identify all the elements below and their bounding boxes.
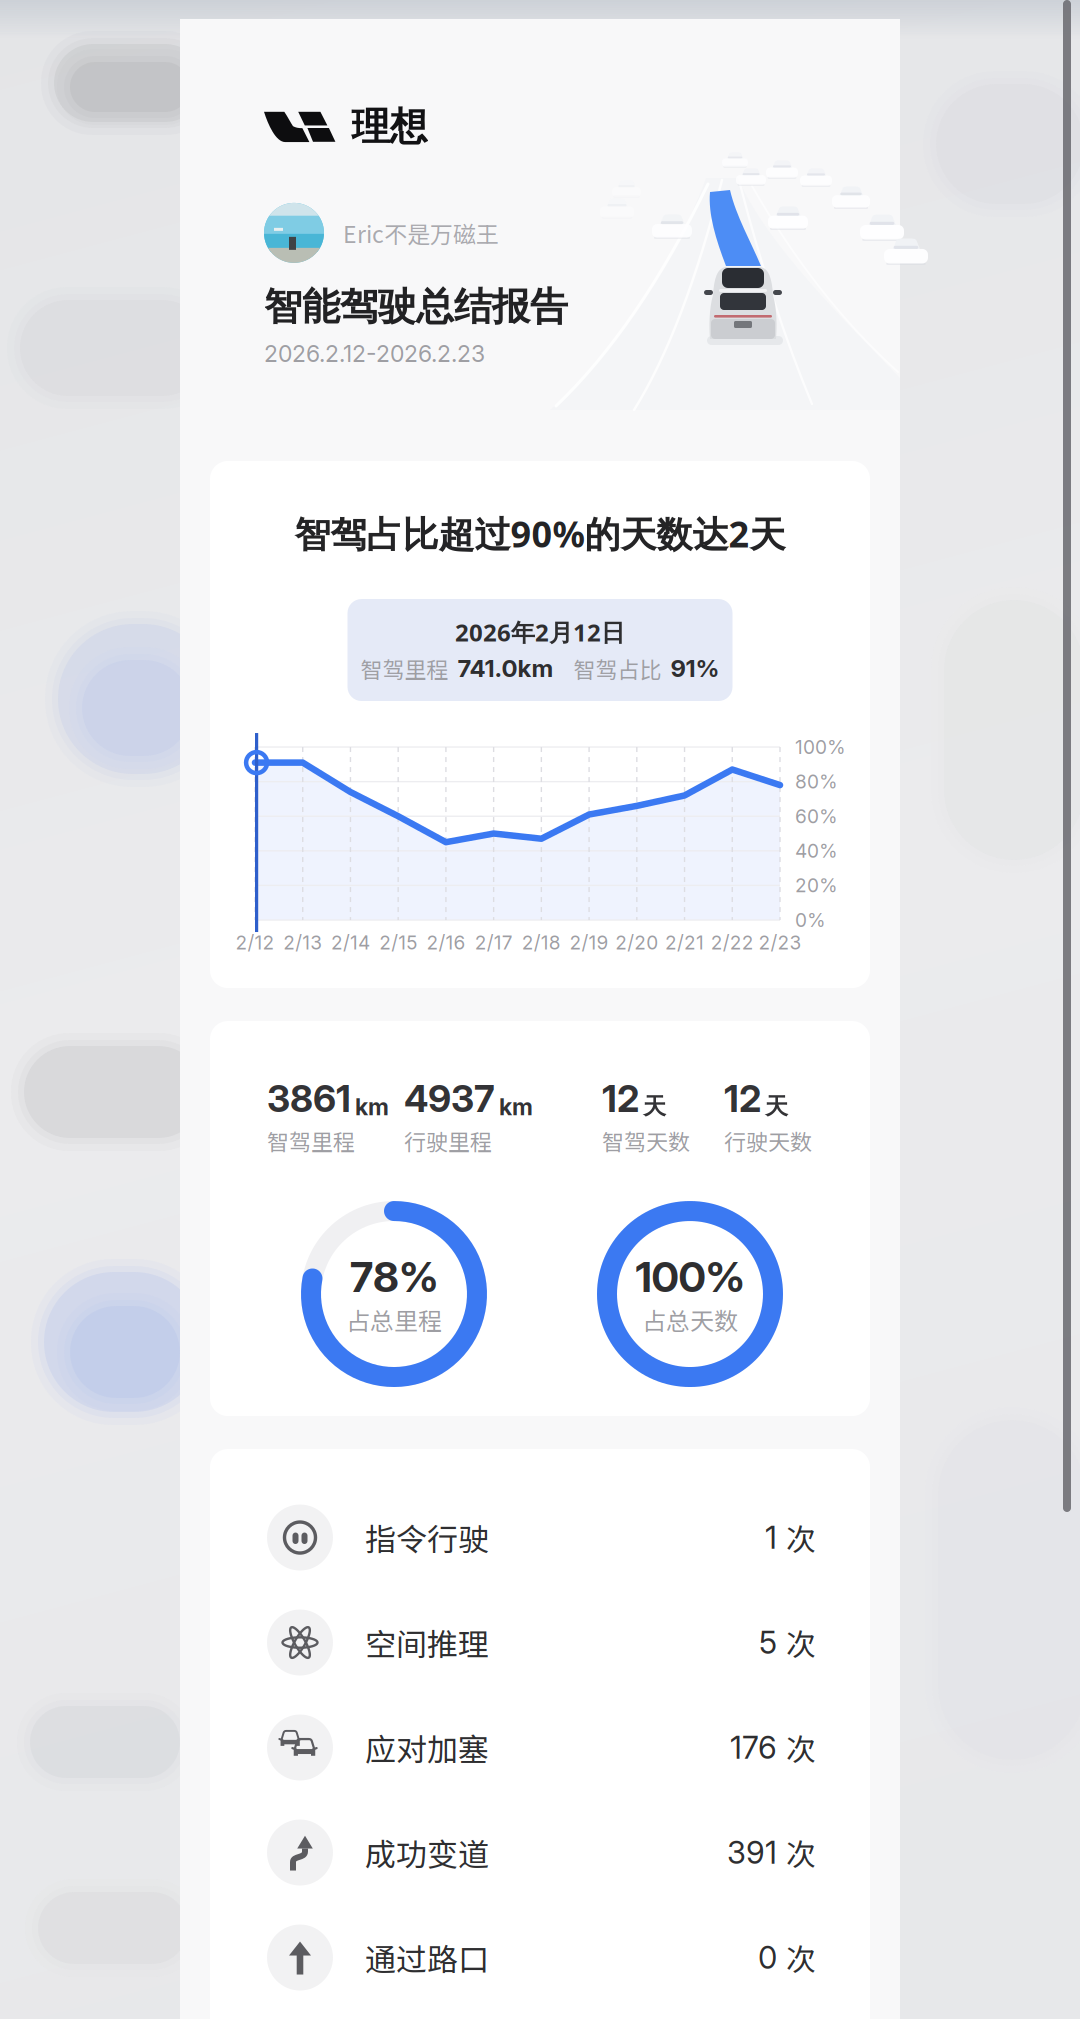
staticText: 智驾里程 — [267, 1125, 355, 1157]
staticText: 指令行驶 — [365, 1515, 489, 1560]
button[interactable]: 空间推理 — [210, 1590, 870, 1695]
staticText: 40% — [795, 839, 838, 862]
staticText: 通过路口 — [365, 1935, 489, 1980]
staticText: 12 — [602, 1076, 639, 1121]
staticText: 91% — [670, 654, 719, 683]
staticText: 天 — [643, 1092, 666, 1121]
staticText: km — [499, 1093, 533, 1121]
staticText: 20% — [795, 874, 838, 897]
staticText: 3861 — [267, 1076, 351, 1121]
staticText: 次 — [786, 1831, 816, 1874]
staticText: 次 — [786, 1621, 816, 1664]
staticText: 2026.2.12-2026.2.23 — [264, 340, 485, 367]
staticText: 2/14 — [331, 931, 370, 954]
button[interactable]: 应对加塞 — [210, 1695, 870, 1800]
staticText: 2/19 — [570, 931, 609, 954]
button[interactable]: 指令行驶 — [210, 1485, 870, 1590]
staticText: 741.0km — [457, 654, 553, 683]
staticText: 5 — [759, 1624, 777, 1661]
staticText: 占总天数 — [642, 1302, 738, 1337]
staticText: 智能驾驶总结报告 — [264, 283, 568, 331]
staticText: 次 — [786, 1726, 816, 1769]
staticText: 理想 — [351, 103, 427, 151]
button[interactable]: 成功变道 — [210, 1800, 870, 1905]
staticText: 2/15 — [379, 931, 417, 954]
staticText: 100% — [795, 735, 846, 758]
staticText: 行驶天数 — [724, 1125, 812, 1157]
staticText: 60% — [795, 805, 838, 828]
staticText: 4937 — [404, 1076, 495, 1121]
staticText: 天 — [765, 1092, 788, 1121]
staticText: 智驾天数 — [602, 1125, 690, 1157]
staticText: 2026年2月12日 — [455, 616, 625, 648]
staticText: 智驾占比 — [573, 652, 661, 684]
staticText: 2/12 — [235, 931, 274, 954]
staticText: 391 — [727, 1834, 777, 1871]
staticText: 78% — [350, 1251, 438, 1302]
staticText: 行驶里程 — [404, 1125, 492, 1157]
staticText: 1 — [765, 1519, 777, 1556]
staticText: 2/22 — [711, 931, 754, 954]
staticText: 0% — [795, 908, 826, 931]
staticText: 应对加塞 — [365, 1725, 489, 1770]
staticText: 成功变道 — [365, 1830, 489, 1875]
staticText: 176 — [730, 1729, 777, 1766]
staticText: 2/20 — [615, 931, 658, 954]
staticText: 2/23 — [758, 931, 801, 954]
staticText: 2/21 — [665, 931, 704, 954]
staticText: 2/17 — [475, 931, 513, 954]
staticText: 次 — [786, 1936, 816, 1979]
staticText: Eric不是万磁王 — [343, 216, 499, 249]
staticText: 2/13 — [283, 931, 322, 954]
staticText: 智驾里程 — [360, 652, 448, 684]
button[interactable]: 通过路口 — [210, 1905, 870, 2010]
staticText: 2/18 — [522, 931, 561, 954]
staticText: 2/16 — [426, 931, 465, 954]
staticText: 100% — [635, 1251, 744, 1302]
staticText: 次 — [786, 1516, 816, 1559]
staticText: 智驾占比超过90%的天数达2天 — [294, 509, 785, 558]
staticText: km — [355, 1093, 389, 1121]
staticText: 12 — [724, 1076, 761, 1121]
staticText: 占总里程 — [346, 1302, 442, 1337]
staticText: 0 — [758, 1939, 777, 1976]
staticText: 80% — [795, 770, 838, 793]
staticText: 空间推理 — [365, 1620, 489, 1665]
